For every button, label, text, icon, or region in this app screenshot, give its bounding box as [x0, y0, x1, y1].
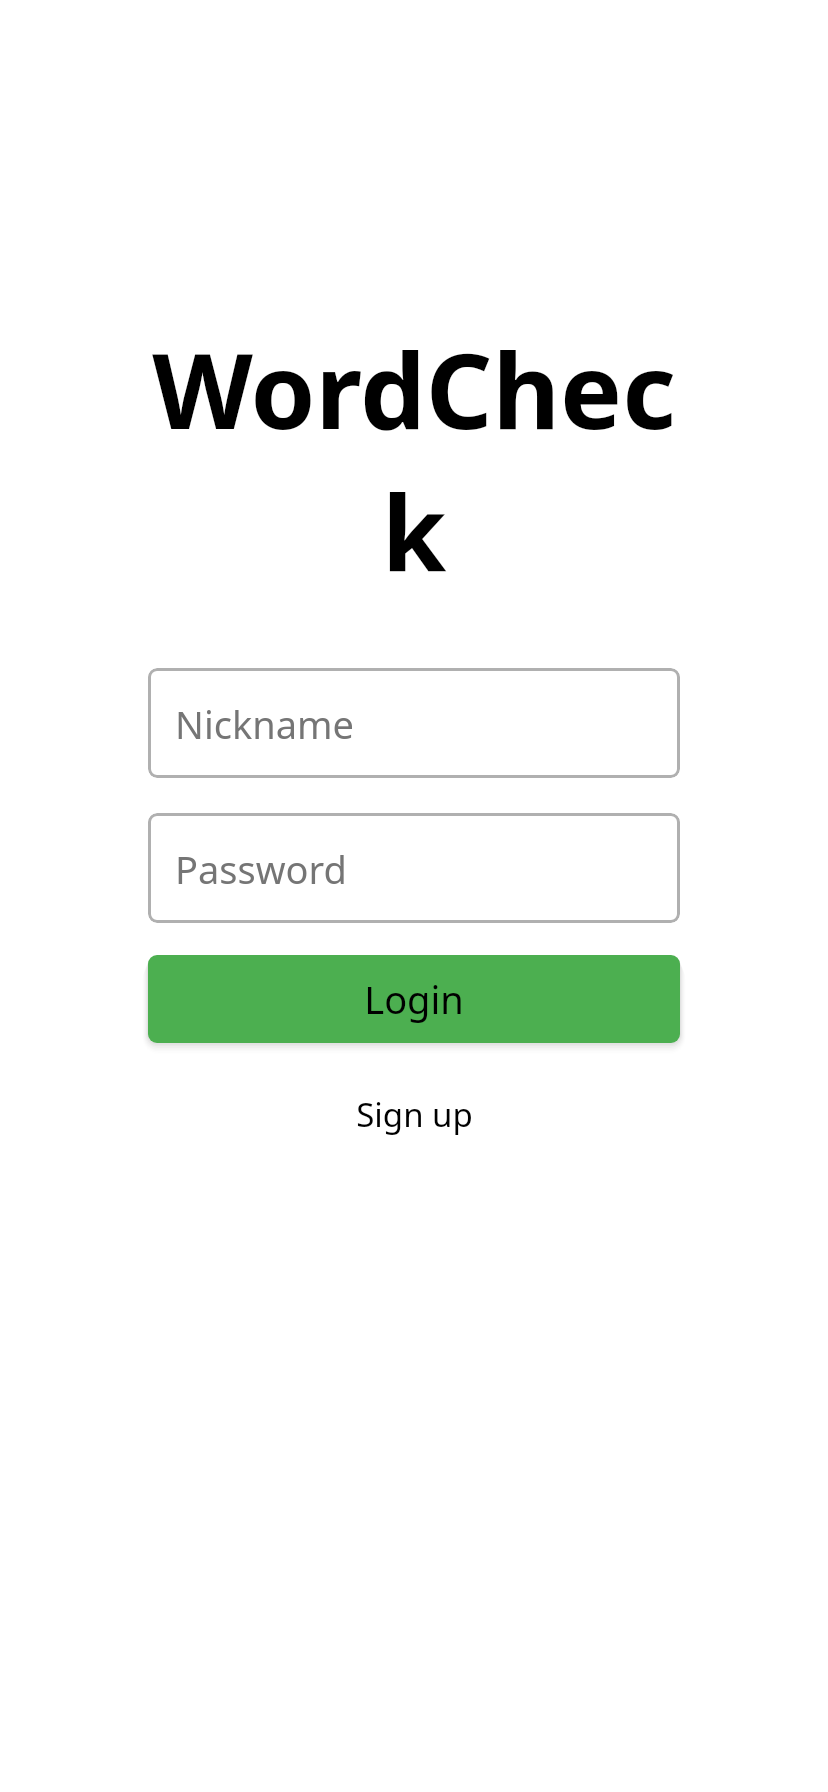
button[interactable]: Sign up — [348, 1088, 481, 1141]
staticText: Sign up — [356, 1092, 473, 1137]
button[interactable]: Password — [148, 813, 680, 923]
staticText: Password — [175, 843, 347, 895]
staticText: Login — [364, 973, 464, 1025]
button[interactable]: Login — [148, 955, 680, 1043]
button[interactable]: Nickname — [148, 668, 680, 778]
staticText: Nickname — [175, 698, 354, 750]
staticText: WordCheck — [148, 318, 680, 602]
